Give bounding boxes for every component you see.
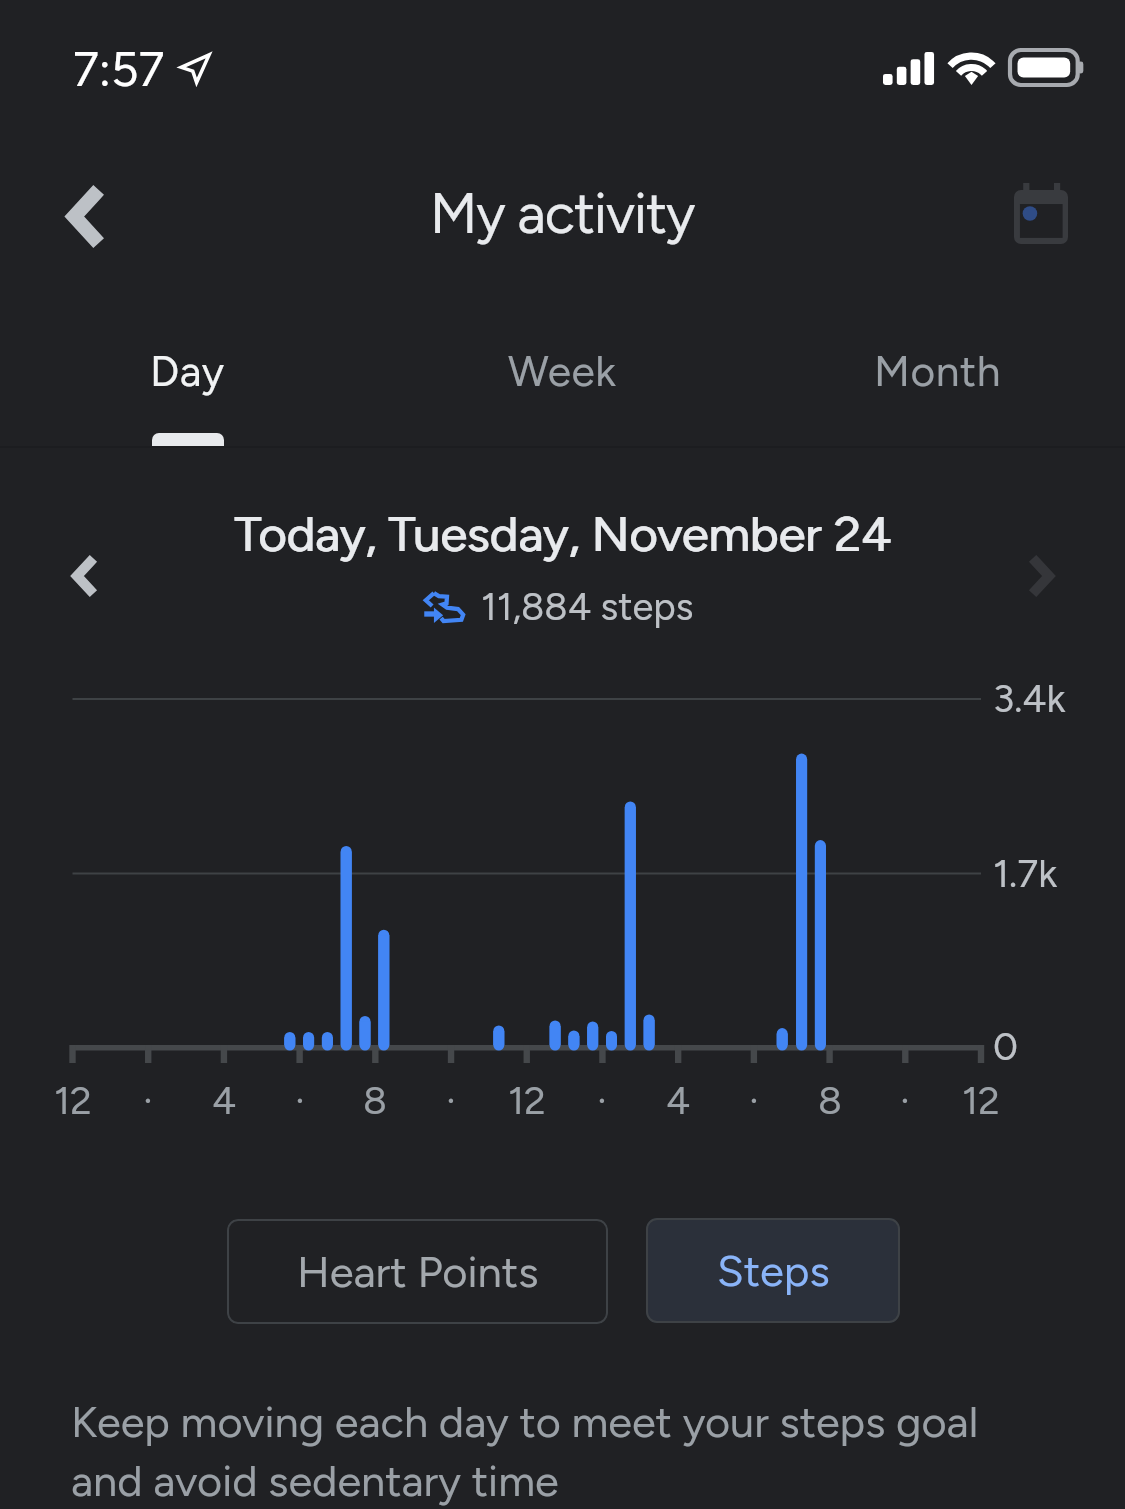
- button[interactable]: Calendar: [985, 152, 1097, 274]
- staticText: ·: [446, 1077, 456, 1124]
- staticText: 8: [363, 1077, 387, 1124]
- staticText: Month: [874, 346, 1002, 397]
- button[interactable]: Month: [750, 297, 1125, 447]
- staticText: Keep moving each day to meet your steps …: [71, 1396, 991, 1507]
- staticText: 0: [993, 1023, 1018, 1070]
- staticText: Today, Tuesday, November 24: [234, 505, 891, 564]
- staticText: ·: [749, 1077, 759, 1124]
- button[interactable]: Steps: [646, 1218, 900, 1323]
- staticText: 12: [54, 1077, 92, 1124]
- button[interactable]: Previous day: [39, 532, 127, 620]
- staticText: Week: [508, 346, 617, 397]
- staticText: ·: [597, 1077, 607, 1124]
- staticText: 4: [212, 1077, 237, 1124]
- staticText: 12: [508, 1077, 546, 1124]
- staticText: ·: [900, 1077, 910, 1124]
- staticText: Day: [150, 346, 225, 397]
- staticText: ·: [295, 1077, 305, 1124]
- staticText: ·: [143, 1077, 153, 1124]
- staticText: My activity: [430, 180, 695, 247]
- button[interactable]: Day: [0, 297, 375, 447]
- staticText: 3.4k: [993, 675, 1066, 722]
- button[interactable]: Heart Points: [227, 1219, 608, 1324]
- staticText: 4: [666, 1077, 691, 1124]
- staticText: Steps: [717, 1245, 830, 1297]
- staticText: Today, Tuesday, November 24: [235, 505, 892, 564]
- staticText: 7:57: [73, 40, 165, 98]
- staticText: 12: [962, 1077, 1000, 1124]
- staticText: Heart Points: [297, 1246, 539, 1298]
- staticText: 1.7k: [993, 850, 1058, 897]
- staticText: 11,884 steps: [481, 584, 694, 630]
- button[interactable]: Week: [375, 297, 750, 447]
- button[interactable]: Next day: [998, 532, 1086, 620]
- button[interactable]: Back: [38, 156, 130, 276]
- staticText: 8: [818, 1077, 842, 1124]
